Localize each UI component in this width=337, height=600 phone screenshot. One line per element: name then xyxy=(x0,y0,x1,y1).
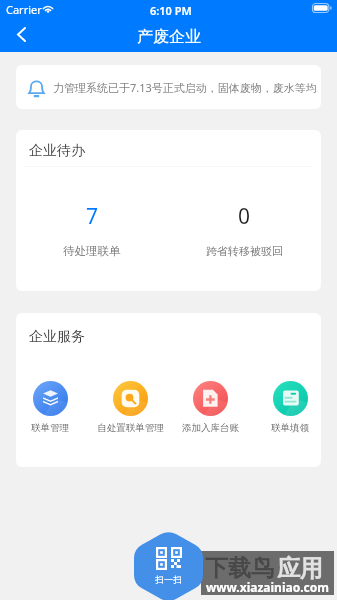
staticText: Carrier xyxy=(6,2,42,17)
staticText: 企业服务 xyxy=(29,328,85,346)
staticText: 联单管理 xyxy=(31,422,69,434)
staticText: 联单填领 xyxy=(271,422,309,434)
staticText: 企业待办 xyxy=(29,142,85,160)
staticText: www.xiazainiao.com xyxy=(206,579,329,595)
staticText: 自处置联单管理 xyxy=(97,422,164,434)
button[interactable]: 7 xyxy=(16,202,168,258)
staticText: 6:10 PM xyxy=(150,3,192,18)
button[interactable]: 力管理系统已于7.13号正式启动，固体废物，废水等均 xyxy=(16,65,321,109)
button[interactable]: 0 xyxy=(168,202,321,258)
button[interactable]: 扫一扫 xyxy=(134,530,203,600)
button[interactable]: 联单填领 xyxy=(250,381,321,434)
staticText: 跨省转移被驳回 xyxy=(206,244,283,258)
staticText: 产废企业 xyxy=(137,27,201,47)
button[interactable]: 自处置联单管理 xyxy=(90,381,170,434)
staticText: 力管理系统已于7.13号正式启动，固体废物，废水等均 xyxy=(53,80,317,95)
button[interactable]: 联单管理 xyxy=(16,381,90,434)
staticText: 添加入库台账 xyxy=(182,422,239,434)
button[interactable]: Back xyxy=(0,13,42,55)
button[interactable]: 添加入库台账 xyxy=(170,381,250,434)
staticText: 待处理联单 xyxy=(63,244,121,258)
staticText: 0 xyxy=(238,202,251,231)
staticText: 下载鸟 xyxy=(205,554,274,583)
staticText: 应用 xyxy=(277,554,323,583)
staticText: 扫一扫 xyxy=(155,574,182,585)
staticText: 7 xyxy=(86,202,99,231)
